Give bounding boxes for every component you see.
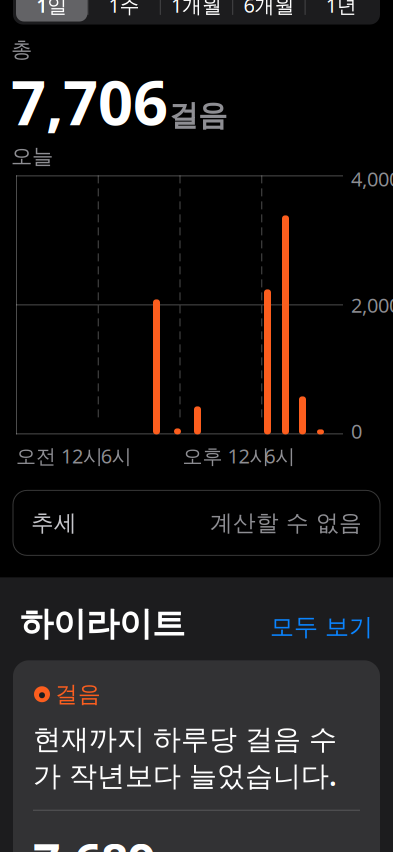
staticText: 현재까지 하루당 걸음 수가 작년보다 늘었습니다. — [33, 722, 337, 794]
staticText: 하이라이트 — [20, 603, 185, 644]
button[interactable]: 6개월 — [233, 0, 305, 21]
button[interactable]: 1개월 — [161, 0, 232, 21]
button[interactable]: 걸음 — [13, 660, 380, 852]
button[interactable]: 모두 보기 — [270, 612, 373, 642]
staticText: 오후 12시 — [182, 442, 269, 469]
staticText: 총 — [11, 36, 32, 63]
staticText: 7,689 — [33, 829, 155, 852]
staticText: 0 — [351, 418, 362, 444]
button[interactable]: 1년 — [306, 0, 377, 21]
staticText: 모두 보기 — [270, 612, 373, 642]
staticText: 1일 — [36, 0, 67, 18]
staticText: 6시 — [101, 442, 132, 469]
staticText: 걸음 — [169, 97, 227, 133]
staticText: 추세 — [31, 509, 77, 537]
button[interactable]: 1주 — [88, 0, 160, 21]
staticText: 1주 — [109, 0, 140, 18]
staticText: 6개월 — [243, 0, 294, 18]
button[interactable]: 1일 — [16, 0, 87, 21]
staticText: 1년 — [326, 0, 357, 18]
staticText: 오늘 — [11, 143, 53, 169]
staticText: 계산할 수 없음 — [210, 509, 362, 537]
staticText: 7,706 — [11, 61, 168, 142]
staticText: 2,000 — [351, 292, 393, 318]
staticText: 오전 12시 — [16, 442, 103, 469]
staticText: 1개월 — [171, 0, 222, 18]
staticText: 4,000 — [351, 165, 393, 192]
button[interactable]: 추세 — [13, 490, 380, 555]
staticText: 걸음 — [55, 680, 101, 708]
staticText: 6시 — [264, 442, 295, 469]
